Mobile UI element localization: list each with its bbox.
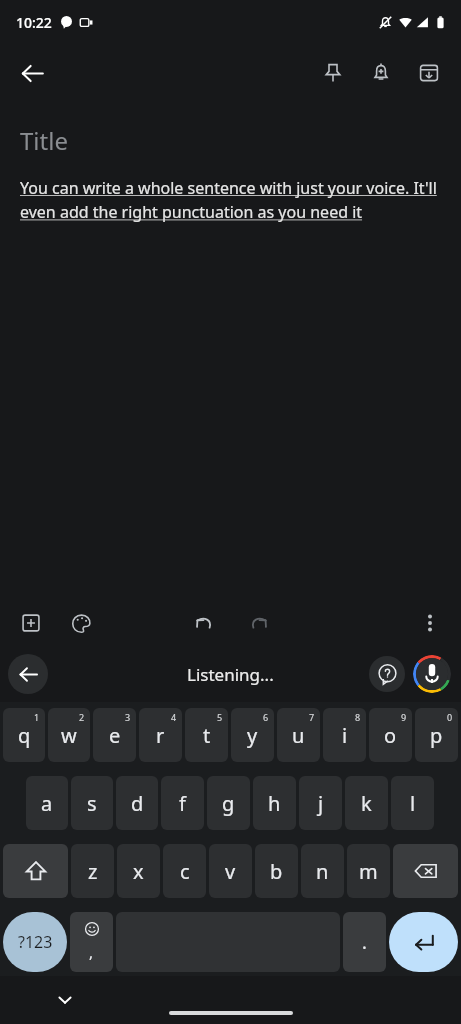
button[interactable]: Pin <box>309 49 357 97</box>
button[interactable]: z <box>71 844 114 898</box>
button[interactable]: Enter <box>389 912 458 972</box>
button[interactable]: p <box>415 708 458 762</box>
button[interactable]: i <box>323 708 366 762</box>
button[interactable]: Delete <box>393 844 458 898</box>
button[interactable]: Title <box>20 124 68 157</box>
button[interactable]: j <box>299 776 342 830</box>
button[interactable]: Archive <box>405 49 453 97</box>
button[interactable]: Hide keyboard <box>50 985 80 1015</box>
button[interactable]: ?123 <box>3 912 67 972</box>
staticText: m <box>359 858 378 885</box>
staticText: j <box>318 790 324 817</box>
button[interactable]: Close voice input <box>8 654 48 694</box>
staticText: 1 <box>34 711 40 723</box>
staticText: f <box>179 790 186 817</box>
staticText: p <box>430 722 443 749</box>
button[interactable]: Back <box>8 49 56 97</box>
staticText: ?123 <box>18 931 53 953</box>
button[interactable]: Microphone <box>413 655 451 693</box>
staticText: x <box>133 858 144 885</box>
staticText: 4 <box>171 711 177 723</box>
staticText: 3 <box>125 711 131 723</box>
button[interactable]: s <box>71 776 113 830</box>
staticText: g <box>222 790 235 817</box>
button[interactable]: o <box>369 708 412 762</box>
staticText: b <box>270 858 283 885</box>
button[interactable]: w <box>48 708 90 762</box>
button[interactable]: k <box>345 776 388 830</box>
staticText: 8 <box>355 711 361 723</box>
staticText: 9 <box>401 711 407 723</box>
button[interactable]: m <box>347 844 390 898</box>
button[interactable]: Emoji and comma <box>70 912 113 972</box>
button[interactable]: More options <box>409 602 451 644</box>
staticText: c <box>180 858 190 885</box>
button[interactable]: y <box>231 708 274 762</box>
staticText: z <box>88 858 98 885</box>
button[interactable]: x <box>117 844 160 898</box>
button[interactable]: Add reminder <box>357 49 405 97</box>
staticText: 0 <box>447 711 453 723</box>
button[interactable]: Add <box>10 602 52 644</box>
button[interactable]: u <box>277 708 320 762</box>
button[interactable]: g <box>207 776 250 830</box>
staticText: , <box>89 942 94 962</box>
button[interactable]: f <box>161 776 204 830</box>
staticText: u <box>292 722 305 749</box>
button[interactable]: n <box>301 844 344 898</box>
staticText: 7 <box>309 711 315 723</box>
button[interactable]: Background options <box>60 602 102 644</box>
staticText: w <box>61 722 77 749</box>
button[interactable]: . <box>343 912 386 972</box>
staticText: e <box>109 722 121 749</box>
staticText: h <box>268 790 281 817</box>
staticText: 2 <box>79 711 85 723</box>
button[interactable]: v <box>209 844 252 898</box>
button[interactable]: Shift <box>3 844 68 898</box>
button[interactable]: r <box>139 708 182 762</box>
button[interactable]: b <box>255 844 298 898</box>
button[interactable]: e <box>93 708 136 762</box>
staticText: v <box>225 858 236 885</box>
button[interactable]: a <box>26 776 68 830</box>
staticText: 5 <box>217 711 223 723</box>
staticText: . <box>362 930 367 955</box>
button[interactable]: h <box>253 776 296 830</box>
staticText: i <box>342 722 348 749</box>
staticText: l <box>410 790 416 817</box>
button[interactable]: Help <box>369 656 405 692</box>
staticText: d <box>131 790 144 817</box>
staticText: Listening... <box>187 663 274 686</box>
staticText: s <box>87 790 97 817</box>
staticText: 6 <box>263 711 269 723</box>
button[interactable]: You can write a whole sentence with just… <box>20 177 441 223</box>
staticText: n <box>316 858 329 885</box>
staticText: q <box>18 722 31 749</box>
button[interactable]: Redo <box>238 602 280 644</box>
staticText: r <box>156 722 165 749</box>
button[interactable]: d <box>116 776 158 830</box>
button[interactable]: t <box>185 708 228 762</box>
staticText: 10:22 <box>16 13 52 32</box>
button[interactable]: l <box>391 776 434 830</box>
staticText: t <box>203 722 211 749</box>
button[interactable]: q <box>3 708 45 762</box>
staticText: y <box>247 722 258 749</box>
button[interactable]: c <box>163 844 206 898</box>
button[interactable]: Undo <box>182 602 224 644</box>
staticText: o <box>384 722 397 749</box>
staticText: a <box>41 790 53 817</box>
staticText: k <box>361 790 372 817</box>
